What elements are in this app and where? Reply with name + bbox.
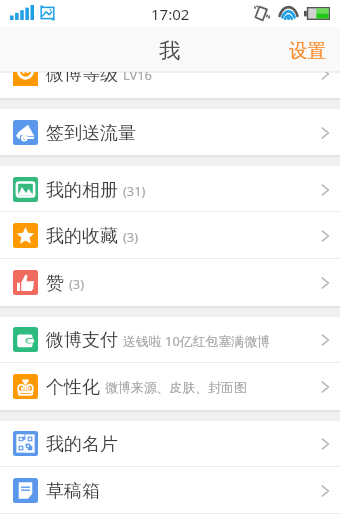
button[interactable]: 签到送流量 [0, 109, 340, 156]
staticText: 我的名片 [46, 433, 118, 456]
button[interactable]: 我的名片 [0, 420, 340, 467]
staticText: 送钱啦 10亿红包塞满微博 [123, 332, 271, 350]
button[interactable]: 个性化 [0, 363, 340, 410]
staticText: (3) [69, 275, 85, 293]
button[interactable]: 设置 [277, 27, 340, 72]
button[interactable]: 草稿箱 [0, 467, 340, 514]
staticText: 我的收藏 [46, 225, 118, 248]
staticText: 赞 [46, 272, 64, 295]
staticText: 我 [159, 37, 181, 64]
staticText: 草稿箱 [46, 480, 100, 503]
staticText: LV16 [123, 66, 152, 84]
button[interactable]: 微博支付 [0, 316, 340, 363]
staticText: 微博来源、皮肤、封面图 [105, 380, 247, 396]
button[interactable]: 微博等级 [0, 50, 340, 97]
button[interactable]: 我的收藏 [0, 212, 340, 259]
staticText: (31) [123, 182, 146, 200]
staticText: 个性化 [46, 376, 100, 399]
staticText: 17:02 [151, 4, 190, 24]
staticText: 签到送流量 [46, 122, 136, 145]
staticText: 我的相册 [46, 179, 118, 202]
staticText: 设置 [289, 39, 326, 62]
staticText: 微博支付 [46, 329, 118, 352]
button[interactable]: 赞 [0, 259, 340, 306]
staticText: 微博等级 [46, 63, 118, 86]
button[interactable]: 我的相册 [0, 166, 340, 213]
staticText: (3) [123, 228, 139, 246]
